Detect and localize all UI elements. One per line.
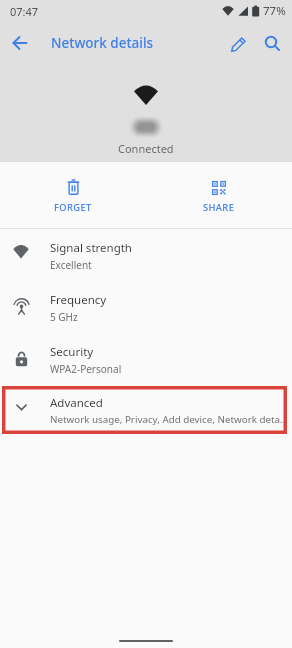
staticText: Signal strength bbox=[50, 240, 132, 256]
button[interactable]: Advanced bbox=[2, 386, 287, 434]
staticText: Network usage, Privacy, Add device, Netw… bbox=[50, 413, 284, 426]
staticText: 07:47 bbox=[10, 4, 39, 19]
button[interactable]: SHARE bbox=[146, 162, 292, 228]
button[interactable]: FORGET bbox=[0, 162, 146, 228]
staticText: 77% bbox=[263, 3, 286, 19]
staticText: Network details bbox=[51, 34, 154, 52]
button[interactable] bbox=[260, 31, 284, 55]
staticText: SHARE bbox=[203, 201, 235, 214]
staticText: Excellent bbox=[50, 258, 92, 272]
button[interactable] bbox=[8, 31, 32, 55]
staticText: Security bbox=[50, 344, 94, 360]
staticText: Advanced bbox=[50, 395, 103, 411]
staticText: FORGET bbox=[54, 201, 92, 214]
staticText: Connected bbox=[118, 141, 174, 156]
button[interactable]: Signal strength bbox=[0, 229, 292, 282]
staticText: Frequency bbox=[50, 292, 107, 308]
staticText: WPA2-Personal bbox=[50, 362, 122, 376]
staticText: 5 GHz bbox=[50, 310, 78, 324]
button[interactable]: Security bbox=[0, 334, 292, 386]
button[interactable]: Frequency bbox=[0, 282, 292, 334]
button[interactable] bbox=[227, 31, 251, 55]
